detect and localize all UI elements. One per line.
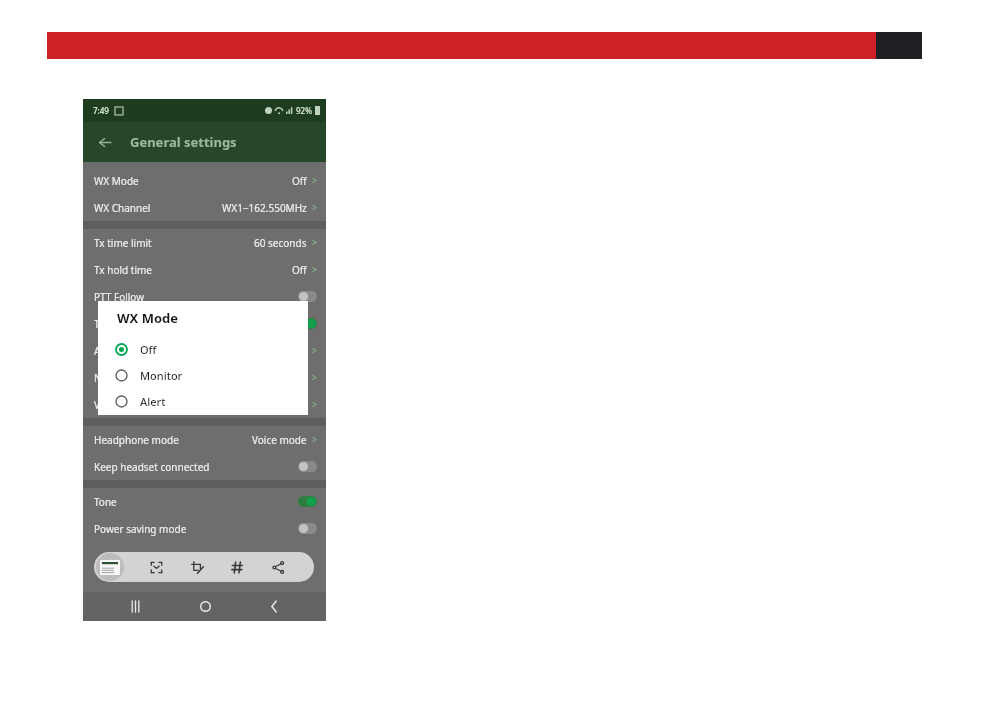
staticText: Alert <box>140 394 166 409</box>
button[interactable]: Tx time limit <box>83 229 326 256</box>
button[interactable]: Add hashtag <box>224 554 250 580</box>
button[interactable]: Off <box>298 523 317 534</box>
staticText: Keep headset connected <box>94 460 210 474</box>
staticText: Tone <box>94 495 117 509</box>
button[interactable]: WX Channel <box>83 194 326 221</box>
staticText: Headphone mode <box>94 433 179 447</box>
staticText: Voice activation gain <box>94 398 191 412</box>
button[interactable]: Tone squelch <box>83 310 326 337</box>
staticText: WX Channel <box>94 201 151 215</box>
button[interactable]: Back <box>92 130 116 154</box>
button[interactable]: Off <box>298 291 317 302</box>
staticText: 7:49 <box>93 105 109 116</box>
button[interactable]: On <box>298 318 317 329</box>
staticText: Tone squelch <box>94 317 156 331</box>
staticText: Off <box>140 342 157 357</box>
staticText: PTT Follow <box>94 290 145 304</box>
staticText: Off <box>292 174 307 188</box>
staticText: Tx time limit <box>94 236 152 250</box>
button[interactable]: Tone <box>83 488 326 515</box>
staticText: 92% <box>296 105 312 116</box>
button[interactable]: Monitor <box>98 362 308 388</box>
staticText: APO <box>94 344 115 358</box>
button[interactable]: Tx hold time <box>83 256 326 283</box>
button[interactable]: PTT Follow <box>83 283 326 310</box>
button[interactable]: Power saving mode <box>83 515 326 542</box>
button[interactable]: Capture more <box>143 554 169 580</box>
staticText: WX Mode <box>117 309 179 327</box>
staticText: WX Mode <box>94 174 139 188</box>
button[interactable]: Voice activation gain <box>83 391 326 418</box>
button[interactable]: On <box>298 496 317 507</box>
button[interactable]: Screenshot preview <box>96 553 124 581</box>
staticText: 60 seconds <box>254 236 307 250</box>
staticText: Monitor <box>140 368 183 383</box>
button[interactable]: Home <box>188 592 222 621</box>
button[interactable]: APO <box>83 337 326 364</box>
staticText: WX1−162.550MHz <box>222 201 307 215</box>
button[interactable]: Crop and draw <box>184 554 210 580</box>
staticText: Power saving mode <box>94 522 187 536</box>
staticText: Voice mode <box>252 433 307 447</box>
button[interactable]: WX Mode <box>83 167 326 194</box>
staticText: Noise reduction <box>94 371 169 385</box>
button[interactable]: Share <box>265 554 291 580</box>
staticText: Off <box>292 263 307 277</box>
button[interactable]: Headphone mode <box>83 426 326 453</box>
button[interactable]: Off <box>298 461 317 472</box>
button[interactable]: Keep headset connected <box>83 453 326 480</box>
button[interactable]: Noise reduction <box>83 364 326 391</box>
staticText: General settings <box>130 133 237 151</box>
button[interactable]: Recents <box>118 592 152 621</box>
button[interactable]: Alert <box>98 388 308 414</box>
button[interactable]: Off <box>98 336 308 362</box>
button[interactable]: Back <box>257 592 291 621</box>
staticText: Tx hold time <box>94 263 152 277</box>
